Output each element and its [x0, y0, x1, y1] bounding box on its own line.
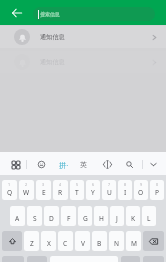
button[interactable]: L: [142, 206, 156, 226]
staticText: 通知信息: [40, 33, 65, 41]
staticText: Z: [30, 239, 34, 248]
staticText: 拼·: [59, 160, 69, 170]
staticText: E: [42, 188, 46, 197]
staticText: S: [33, 214, 37, 223]
button[interactable]: 8: [118, 180, 132, 200]
staticText: L: [147, 214, 151, 223]
button[interactable]: 4: [53, 180, 68, 200]
button[interactable]: 通知信息: [0, 26, 166, 48]
staticText: F: [67, 214, 71, 223]
staticText: 通知信息: [40, 58, 65, 66]
staticText: 8: [124, 182, 127, 187]
staticText: T: [75, 188, 79, 197]
button[interactable]: 搜索信息: [33, 7, 155, 21]
staticText: U: [107, 188, 112, 197]
staticText: 2: [25, 182, 28, 187]
button[interactable]: C: [58, 231, 73, 251]
button[interactable]: 6: [86, 180, 100, 200]
button[interactable]: Shift: [2, 231, 22, 251]
button[interactable]: 1: [2, 180, 17, 200]
button[interactable]: 0: [150, 180, 164, 200]
button[interactable]: Move cursor: [99, 154, 115, 175]
button[interactable]: Search: [121, 154, 137, 175]
button[interactable]: S: [27, 206, 42, 226]
staticText: 4: [59, 182, 62, 187]
staticText: K: [131, 214, 136, 223]
staticText: B: [97, 239, 102, 248]
staticText: Y: [91, 188, 95, 197]
button[interactable]: A: [10, 206, 25, 226]
button[interactable]: V: [75, 231, 90, 251]
staticText: 3: [42, 182, 45, 187]
staticText: Q: [7, 188, 13, 197]
button[interactable]: Z: [24, 231, 39, 251]
staticText: P: [155, 188, 159, 197]
staticText: M: [131, 239, 137, 248]
button[interactable]: 3: [36, 180, 51, 200]
staticText: 5: [76, 182, 79, 187]
button[interactable]: 5: [70, 180, 84, 200]
staticText: D: [49, 214, 54, 223]
staticText: 6: [92, 182, 95, 187]
button[interactable]: 2: [19, 180, 34, 200]
staticText: 9: [140, 182, 143, 187]
button[interactable]: 英: [75, 154, 91, 175]
staticText: 1: [8, 182, 11, 187]
button[interactable]: M: [126, 231, 141, 251]
button[interactable]: Emoji: [33, 154, 49, 175]
button[interactable]: X: [41, 231, 56, 251]
button[interactable]: G: [78, 206, 92, 226]
staticText: X: [47, 239, 51, 248]
button[interactable]: Backspace: [143, 231, 164, 251]
button[interactable]: H: [94, 206, 108, 226]
staticText: O: [138, 188, 144, 197]
staticText: H: [99, 214, 104, 223]
staticText: G: [83, 214, 88, 223]
button[interactable]: N: [109, 231, 124, 251]
button[interactable]: 7: [102, 180, 116, 200]
button[interactable]: Back: [7, 3, 27, 23]
staticText: 7: [108, 182, 111, 187]
staticText: A: [15, 214, 20, 223]
button[interactable]: 9: [134, 180, 148, 200]
staticText: 英: [80, 160, 87, 169]
button[interactable]: B: [92, 231, 107, 251]
staticText: N: [114, 239, 120, 248]
staticText: W: [23, 188, 30, 197]
staticText: C: [63, 239, 68, 248]
button[interactable]: D: [44, 206, 59, 226]
staticText: V: [81, 239, 85, 248]
button[interactable]: F: [61, 206, 76, 226]
staticText: 0: [156, 182, 159, 187]
staticText: 搜索信息: [40, 11, 60, 17]
button[interactable]: Hide keyboard: [145, 154, 161, 175]
staticText: J: [116, 214, 118, 223]
button[interactable]: Keyboard panel: [8, 154, 24, 175]
button[interactable]: J: [110, 206, 124, 226]
button[interactable]: 拼·: [56, 154, 72, 175]
staticText: R: [58, 188, 63, 197]
staticText: I: [124, 188, 127, 197]
button[interactable]: K: [126, 206, 140, 226]
